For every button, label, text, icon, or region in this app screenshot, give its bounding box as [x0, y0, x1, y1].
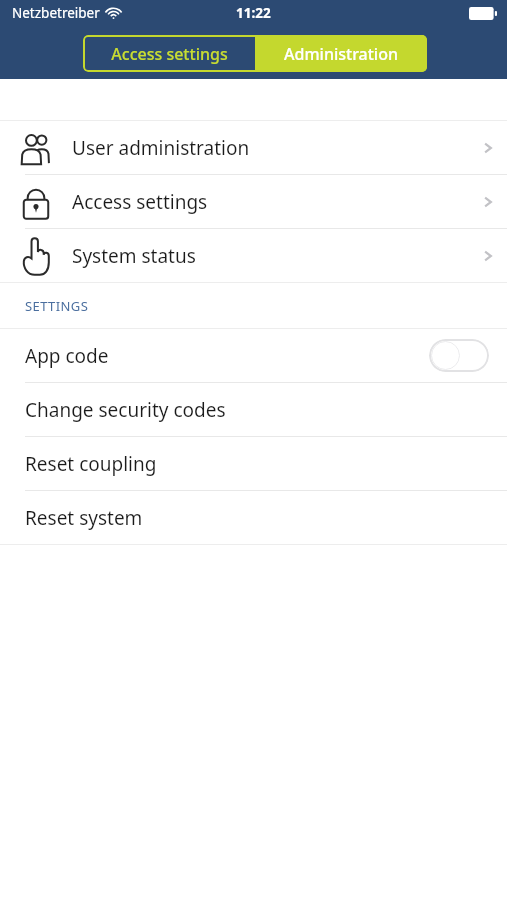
button[interactable]: App code: [0, 329, 507, 382]
button[interactable]: Access settings: [83, 35, 255, 72]
staticText: Administration: [284, 43, 398, 65]
staticText: App code: [25, 343, 429, 369]
staticText: System status: [72, 243, 469, 269]
staticText: User administration: [72, 135, 469, 161]
staticText: Reset system: [25, 505, 143, 531]
staticText: Change security codes: [25, 397, 226, 423]
button[interactable]: App code toggle, off: [429, 339, 489, 372]
staticText: Reset coupling: [25, 451, 157, 477]
button[interactable]: Administration: [255, 35, 427, 72]
button[interactable]: Change security codes: [0, 383, 507, 436]
staticText: SETTINGS: [25, 297, 89, 315]
button[interactable]: Reset coupling: [0, 437, 507, 490]
button[interactable]: Reset system: [0, 491, 507, 544]
staticText: Access settings: [111, 43, 228, 65]
button[interactable]: User administration: [0, 121, 507, 174]
staticText: 11:22: [236, 4, 271, 22]
staticText: Access settings: [72, 189, 469, 215]
button[interactable]: Access settings: [0, 175, 507, 228]
button[interactable]: System status: [0, 229, 507, 282]
staticText: Netzbetreiber: [12, 4, 100, 22]
